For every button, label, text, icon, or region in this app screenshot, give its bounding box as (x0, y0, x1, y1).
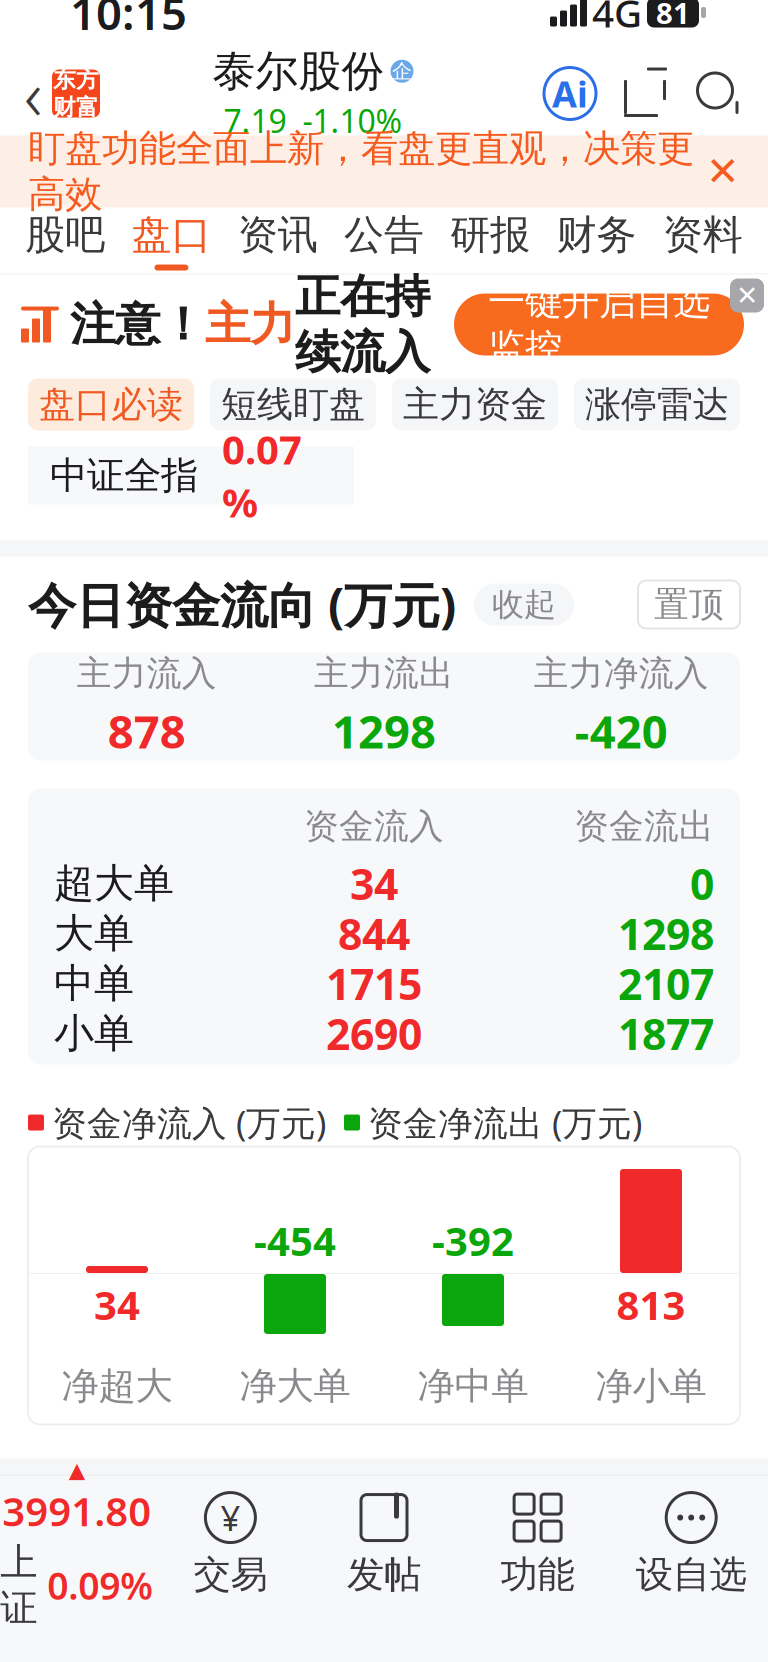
staticText: 844 (338, 905, 410, 962)
button[interactable]: AI 助手 (544, 67, 596, 119)
button[interactable]: 置顶 (638, 580, 740, 628)
button[interactable]: 主力资金 (392, 378, 558, 430)
staticText: -392 (432, 1214, 514, 1267)
staticText: 正在持续流入 (295, 269, 430, 380)
staticText: ✕ (736, 280, 758, 311)
staticText: 公告 (344, 210, 424, 259)
staticText: 财务 (557, 210, 637, 259)
staticText: Ai (552, 70, 588, 117)
staticText: -454 (254, 1214, 336, 1267)
button[interactable]: 股吧 (12, 207, 118, 273)
staticText: 发帖 (347, 1552, 421, 1597)
staticText: 34 (350, 855, 398, 912)
staticText: 今日资金流向 (万元) (28, 573, 456, 636)
staticText: 净大单 (239, 1363, 350, 1409)
staticText: 短线盯盘 (221, 382, 365, 427)
staticText: 主力资金 (403, 382, 547, 427)
staticText: 7.19 -1.10% (223, 99, 402, 142)
button[interactable]: 盘口 (118, 207, 225, 273)
staticText: 2107 (618, 955, 714, 1012)
button[interactable]: 涨停雷达 (574, 378, 740, 430)
button[interactable]: 财务 (543, 207, 650, 273)
staticText: 878 (108, 701, 186, 761)
staticText: ¥ (220, 1495, 240, 1541)
button[interactable]: 返回 (0, 51, 110, 135)
staticText: 资料 (663, 210, 743, 259)
staticText: 中证全指 (50, 453, 198, 498)
staticText: 1298 (332, 701, 436, 761)
staticText: 盘口 (131, 210, 211, 259)
button[interactable]: 盘口必读 (28, 378, 194, 430)
staticText: 资金流出 (574, 805, 714, 848)
button[interactable]: 资讯 (225, 207, 331, 273)
staticText: 企 (392, 59, 412, 84)
staticText: 10:15 (70, 0, 187, 43)
staticText: 净超大 (61, 1363, 172, 1409)
button[interactable]: 功能 (461, 1492, 614, 1597)
staticText: 注意！ (70, 297, 205, 352)
staticText: 0.09% (47, 1560, 153, 1610)
staticText: 泰尔股份 (212, 45, 384, 97)
staticText: 1298 (618, 905, 714, 962)
button[interactable]: ¥ (154, 1492, 307, 1597)
button[interactable]: 公告 (331, 207, 437, 273)
staticText: 3991.80 (2, 1484, 151, 1537)
button[interactable]: 盯盘功能全面上新，看盘更直观，决策更高效 (0, 135, 768, 207)
staticText: 上证 (0, 1539, 37, 1631)
staticText: 主力净流入 (534, 652, 709, 695)
staticText: 小单 (54, 1009, 134, 1058)
button[interactable]: 设自选 (614, 1492, 768, 1597)
staticText: 设自选 (636, 1552, 747, 1597)
button[interactable]: 短线盯盘 (210, 378, 376, 430)
staticText: 交易 (193, 1552, 267, 1597)
staticText: 主力 (205, 297, 295, 352)
staticText: 一键开启自选监控 (488, 279, 710, 370)
button[interactable]: 资料 (650, 207, 756, 273)
staticText: ✕ (706, 149, 740, 194)
staticText: 813 (616, 1278, 685, 1331)
button[interactable]: 发帖 (307, 1492, 461, 1597)
staticText: 东方 财富 (53, 66, 99, 121)
staticText: 置顶 (654, 583, 724, 626)
staticText: 0 (690, 855, 714, 912)
button[interactable]: 搜索 (694, 68, 742, 118)
staticText: 主力流出 (314, 652, 454, 695)
staticText: 0.07% (222, 422, 302, 529)
button[interactable]: 研报 (437, 207, 543, 273)
staticText: 净小单 (595, 1363, 706, 1409)
staticText: 涨停雷达 (585, 382, 729, 427)
staticText: 4G (592, 0, 642, 38)
staticText: 资金净流入 (万元) (52, 1099, 326, 1145)
staticText: 34 (94, 1278, 140, 1331)
staticText: 81 (656, 0, 690, 32)
staticText: 盯盘功能全面上新，看盘更直观，决策更高效 (28, 126, 694, 217)
button[interactable]: 一键开启自选监控 (454, 293, 744, 355)
staticText: 研报 (450, 210, 530, 259)
staticText: 资金流入 (304, 805, 444, 848)
button[interactable]: 关闭广告 (730, 278, 764, 312)
staticText: 1715 (326, 955, 422, 1012)
staticText: 收起 (492, 585, 556, 624)
staticText: 净中单 (417, 1363, 528, 1409)
button[interactable]: ▲ (0, 1458, 154, 1631)
staticText: ▲ (69, 1458, 85, 1482)
staticText: 1877 (618, 1005, 714, 1062)
button[interactable]: 分享 (622, 68, 668, 118)
staticText: 大单 (54, 909, 134, 958)
staticText: 2690 (326, 1005, 422, 1062)
button[interactable]: 收起 (474, 583, 574, 625)
staticText: 主力流入 (77, 652, 217, 695)
staticText: ‹ (24, 47, 42, 140)
staticText: 超大单 (54, 859, 174, 908)
staticText: 股吧 (25, 210, 105, 259)
staticText: 盘口必读 (39, 382, 183, 427)
staticText: 中单 (54, 959, 134, 1008)
staticText: 资金净流出 (万元) (368, 1099, 642, 1145)
staticText: -420 (575, 701, 668, 761)
staticText: 资讯 (238, 210, 318, 259)
staticText: 功能 (501, 1552, 575, 1597)
